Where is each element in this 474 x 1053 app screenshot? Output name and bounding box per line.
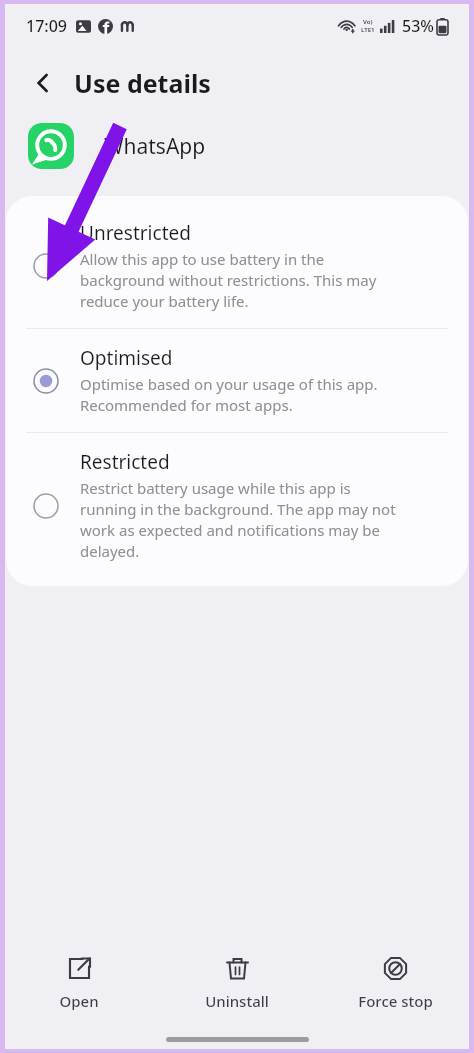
button[interactable]: Open <box>0 940 158 1026</box>
button[interactable]: Uninstall <box>158 940 316 1026</box>
staticText: Unrestricted <box>80 220 191 246</box>
button[interactable]: Force stop <box>316 940 474 1026</box>
button[interactable]: Optimised <box>6 329 468 432</box>
staticText: Optimised <box>80 345 173 371</box>
staticText: WhatsApp <box>104 132 206 161</box>
staticText: Restrict battery usage while this app is… <box>80 478 396 562</box>
staticText: Optimise based on your usage of this app… <box>80 374 378 416</box>
button[interactable]: Unrestricted <box>6 204 468 328</box>
staticText: 53% <box>402 15 434 37</box>
staticText: 17:09 <box>26 15 67 37</box>
staticText: Open <box>59 991 99 1011</box>
staticText: LTE1 <box>361 26 375 34</box>
staticText: Restricted <box>80 449 170 475</box>
staticText: Use details <box>74 66 211 100</box>
button[interactable]: Restricted <box>6 433 468 578</box>
button[interactable]: Back <box>26 66 60 100</box>
staticText: Force stop <box>358 991 433 1011</box>
staticText: Allow this app to use battery in the bac… <box>80 249 377 312</box>
staticText: Uninstall <box>205 991 269 1011</box>
staticText: Vo) <box>363 18 373 26</box>
